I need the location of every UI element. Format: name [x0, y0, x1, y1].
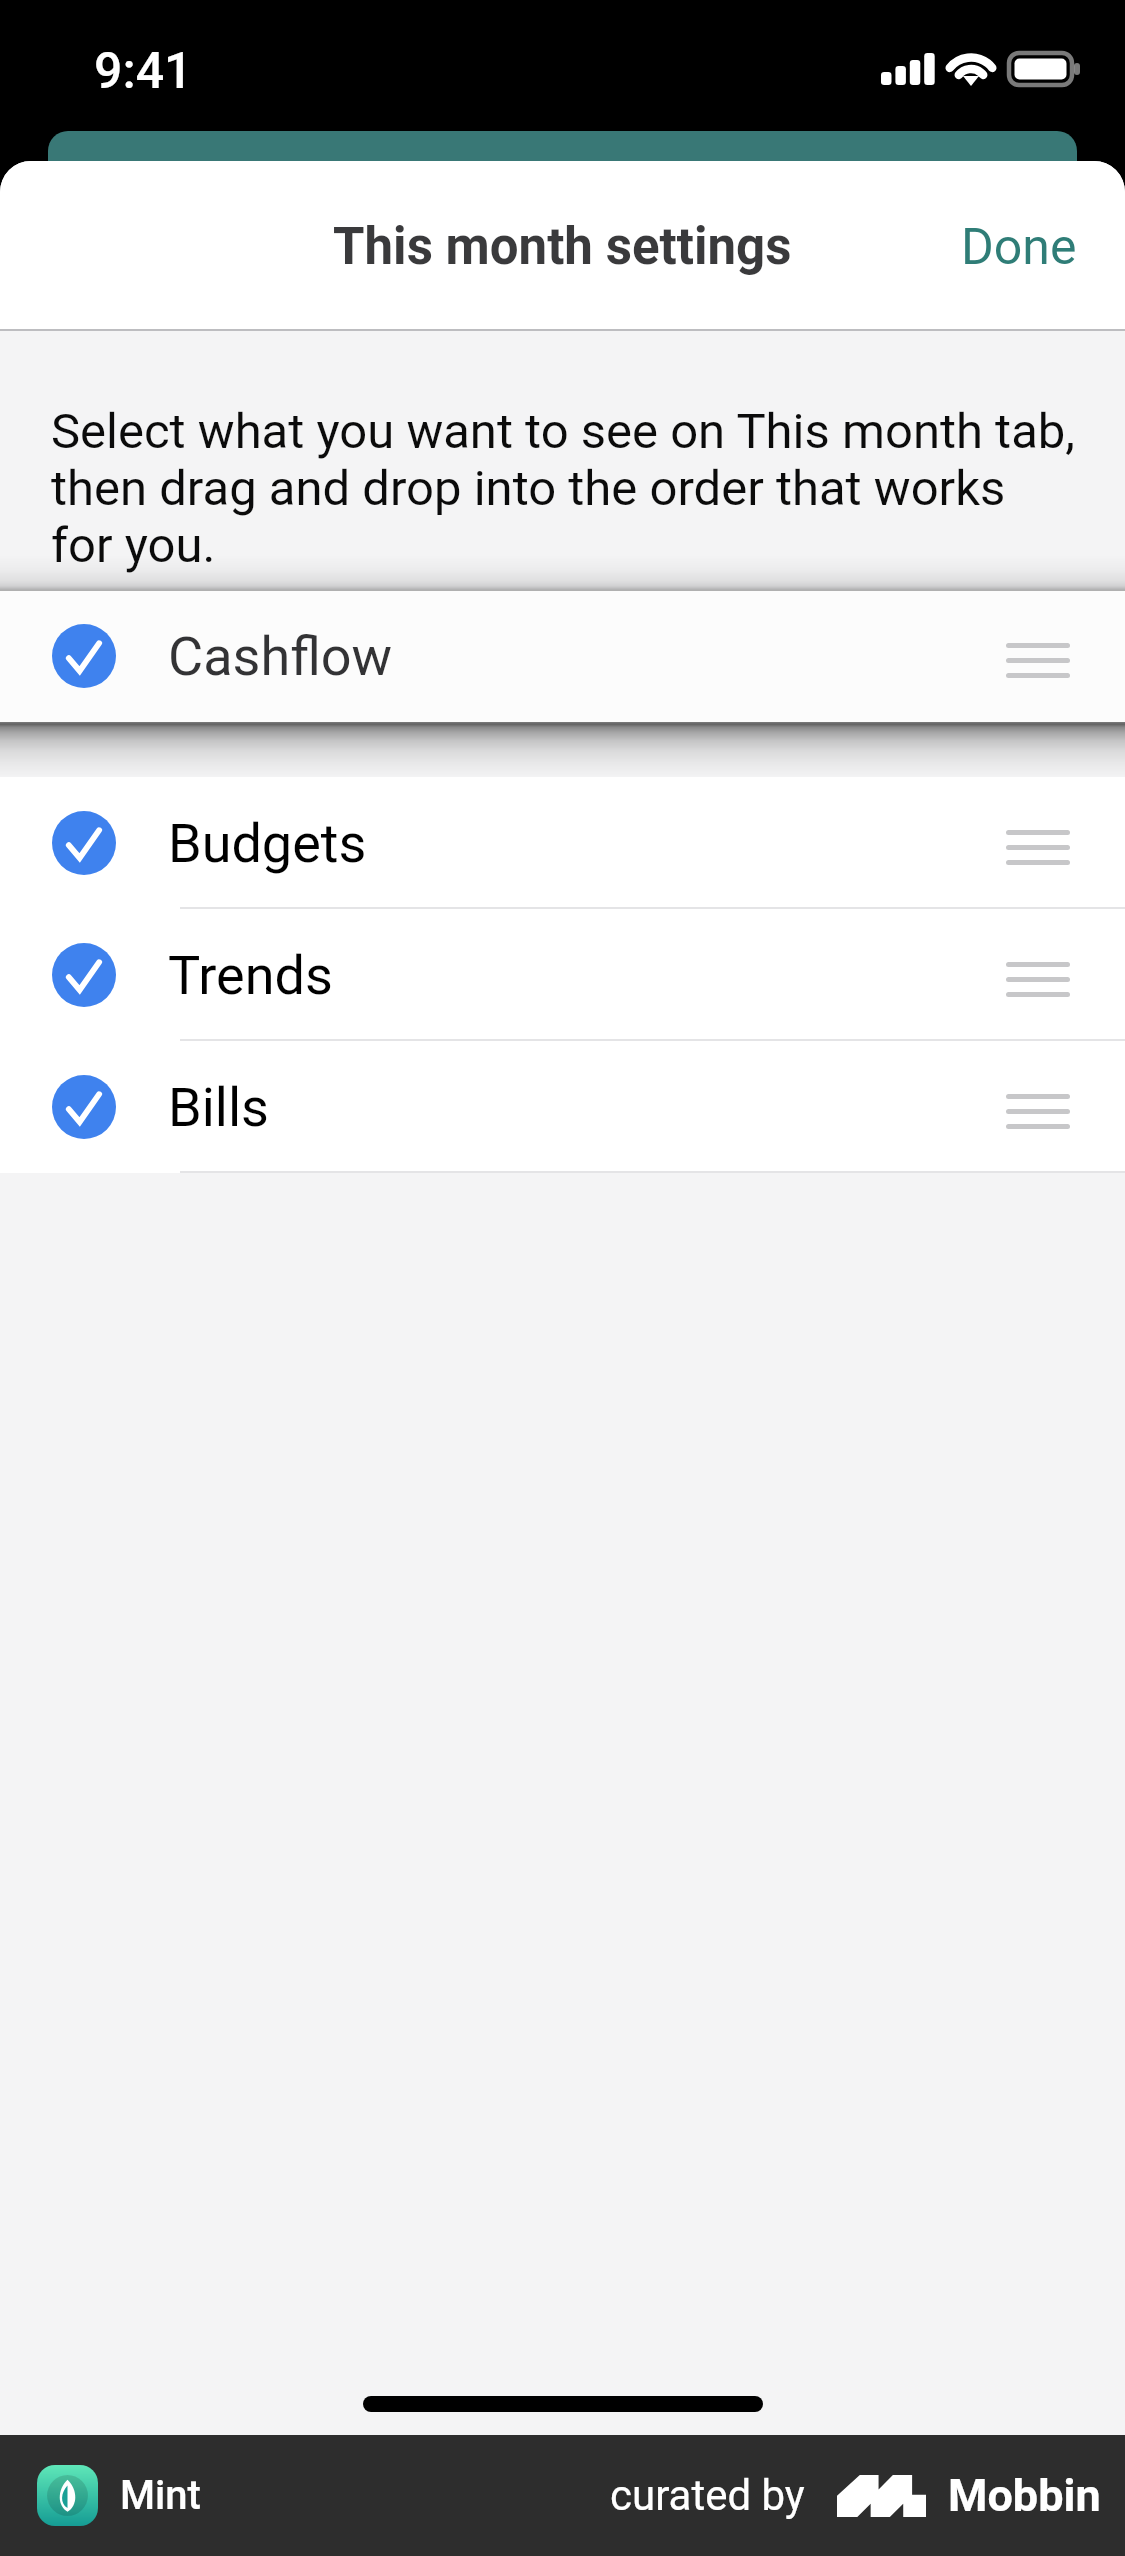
- staticText: Cashflow: [168, 625, 393, 688]
- staticText: Done: [961, 218, 1077, 277]
- other: Reorder Trends: [1006, 952, 1070, 998]
- staticText: Select what you want to see on This mont…: [51, 403, 1077, 574]
- other: Bills selected: [52, 1075, 116, 1139]
- other: Cashflow selected: [52, 624, 116, 688]
- button[interactable]: Bills selected: [0, 1041, 1125, 1173]
- button[interactable]: Budgets selected: [0, 777, 1125, 909]
- staticText: Trends: [168, 944, 333, 1007]
- button[interactable]: Trends selected: [0, 909, 1125, 1041]
- other: Budgets selected: [52, 811, 116, 875]
- staticText: This month settings: [333, 217, 792, 277]
- other: Reorder Bills: [1006, 1084, 1070, 1130]
- other: Reorder Cashflow: [1006, 633, 1070, 679]
- staticText: Mobbin: [948, 2469, 1101, 2522]
- staticText: Mint: [120, 2472, 201, 2519]
- button[interactable]: Cashflow selected: [0, 590, 1125, 722]
- button[interactable]: Done: [901, 182, 1125, 309]
- other: Trends selected: [52, 943, 116, 1007]
- staticText: 9:41: [94, 42, 193, 101]
- staticText: curated by: [610, 2471, 805, 2520]
- staticText: Bills: [168, 1076, 269, 1139]
- other: Reorder Budgets: [1006, 820, 1070, 866]
- staticText: Budgets: [168, 812, 367, 875]
